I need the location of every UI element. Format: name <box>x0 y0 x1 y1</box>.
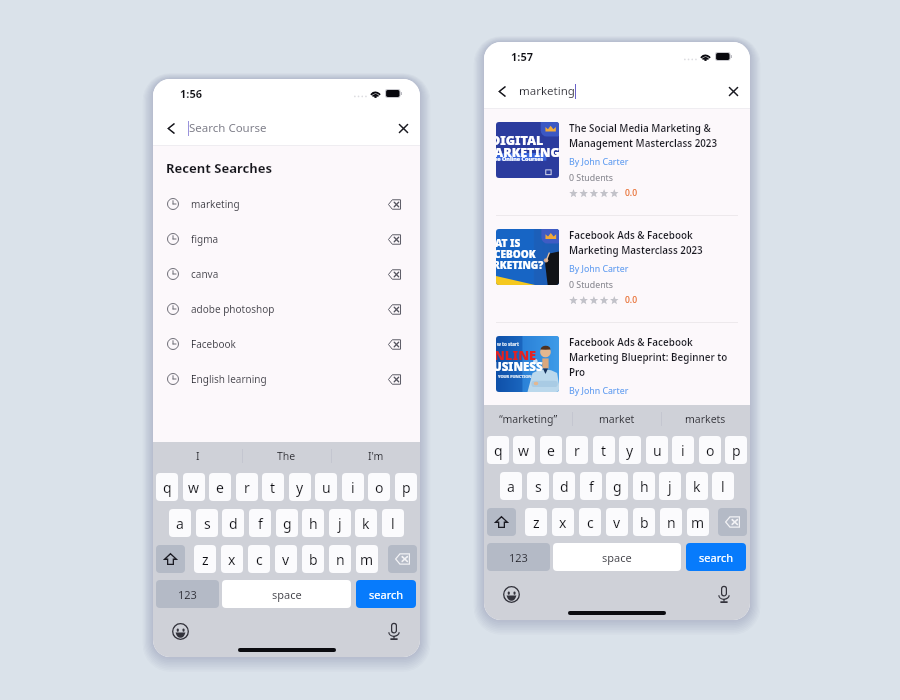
button[interactable]: Back <box>159 116 183 140</box>
button[interactable]: Remove figma <box>384 229 404 249</box>
button[interactable]: r <box>236 473 258 501</box>
staticText: k <box>693 477 701 496</box>
button[interactable]: figma <box>153 221 420 256</box>
button[interactable]: m <box>356 545 378 573</box>
button[interactable]: k <box>355 509 377 537</box>
button[interactable]: Remove canva <box>384 264 404 284</box>
button[interactable]: I'm <box>331 442 420 470</box>
button[interactable]: a <box>500 472 522 500</box>
button[interactable]: h <box>302 509 324 537</box>
button[interactable]: q <box>487 436 509 464</box>
staticText: canva <box>191 267 219 281</box>
button[interactable]: z <box>194 545 216 573</box>
button[interactable]: o <box>368 473 390 501</box>
button[interactable]: y <box>619 436 641 464</box>
button[interactable]: DIGITAL <box>484 109 750 215</box>
button[interactable]: 123 <box>156 580 219 608</box>
button[interactable]: c <box>248 545 270 573</box>
button[interactable]: “marketing” <box>484 405 572 433</box>
button[interactable]: s <box>527 472 549 500</box>
button[interactable]: The <box>242 442 331 470</box>
staticText: adobe photoshop <box>191 302 275 316</box>
button[interactable]: d <box>222 509 244 537</box>
button[interactable]: u <box>646 436 668 464</box>
button[interactable]: z <box>525 508 547 536</box>
button[interactable]: Remove adobe photoshop <box>384 299 404 319</box>
button[interactable]: Clear search <box>391 116 415 140</box>
button[interactable]: Backspace <box>388 545 417 573</box>
button[interactable]: p <box>395 473 417 501</box>
button[interactable]: w <box>183 473 205 501</box>
button[interactable]: l <box>712 472 734 500</box>
button[interactable]: Emoji keyboard <box>501 584 521 604</box>
button[interactable]: 123 <box>487 543 550 571</box>
button[interactable]: Shift <box>487 508 516 536</box>
button[interactable]: Remove English learning <box>384 369 404 389</box>
button[interactable]: u <box>315 473 337 501</box>
button[interactable]: x <box>221 545 243 573</box>
button[interactable]: adobe photoshop <box>153 291 420 326</box>
button[interactable]: l <box>382 509 404 537</box>
button[interactable]: k <box>686 472 708 500</box>
staticText: search <box>369 587 404 602</box>
staticText: The Social Media Marketing & <box>569 122 711 135</box>
button[interactable]: Dictate <box>384 621 404 641</box>
button[interactable]: f <box>580 472 602 500</box>
button[interactable]: English learning <box>153 361 420 396</box>
button[interactable]: canva <box>153 256 420 291</box>
button[interactable]: i <box>342 473 364 501</box>
button[interactable]: h <box>633 472 655 500</box>
button[interactable]: e <box>540 436 562 464</box>
button[interactable]: Remove marketing <box>384 194 404 214</box>
button[interactable]: markets <box>661 405 750 433</box>
button[interactable]: Backspace <box>718 508 747 536</box>
button[interactable]: marketing <box>153 186 420 221</box>
button[interactable]: o <box>699 436 721 464</box>
button[interactable]: Clear search <box>721 79 745 103</box>
button[interactable]: b <box>302 545 324 573</box>
button[interactable]: y <box>289 473 311 501</box>
button[interactable]: Remove Facebook <box>384 334 404 354</box>
button[interactable]: search <box>686 543 746 571</box>
button[interactable]: n <box>660 508 682 536</box>
button[interactable]: market <box>572 405 661 433</box>
button[interactable]: c <box>579 508 601 536</box>
button[interactable]: x <box>552 508 574 536</box>
button[interactable]: t <box>593 436 615 464</box>
button[interactable]: f <box>249 509 271 537</box>
button[interactable]: Facebook <box>153 326 420 361</box>
button[interactable]: d <box>553 472 575 500</box>
button[interactable]: s <box>196 509 218 537</box>
button[interactable]: Shift <box>156 545 185 573</box>
button[interactable]: p <box>725 436 747 464</box>
button[interactable]: e <box>209 473 231 501</box>
staticText: w <box>518 441 530 460</box>
button[interactable]: space <box>553 543 681 571</box>
staticText: figma <box>191 232 219 246</box>
button[interactable]: g <box>276 509 298 537</box>
button[interactable]: Back <box>490 79 514 103</box>
staticText: RKETING? <box>496 258 544 272</box>
button[interactable]: n <box>329 545 351 573</box>
button[interactable]: w <box>513 436 535 464</box>
button[interactable]: a <box>169 509 191 537</box>
button[interactable]: m <box>687 508 709 536</box>
button[interactable]: v <box>275 545 297 573</box>
button[interactable]: AT IS <box>484 216 750 322</box>
button[interactable]: search <box>356 580 416 608</box>
button[interactable]: v <box>606 508 628 536</box>
button[interactable]: b <box>633 508 655 536</box>
button[interactable]: t <box>262 473 284 501</box>
button[interactable]: I <box>153 442 242 470</box>
button[interactable]: Emoji keyboard <box>170 621 190 641</box>
button[interactable]: g <box>606 472 628 500</box>
button[interactable]: j <box>659 472 681 500</box>
button[interactable]: w to start <box>484 323 750 404</box>
button[interactable]: i <box>672 436 694 464</box>
button[interactable]: Dictate <box>714 584 734 604</box>
button[interactable]: space <box>222 580 351 608</box>
staticText: Recent Searches <box>166 159 272 177</box>
button[interactable]: q <box>156 473 178 501</box>
button[interactable]: r <box>566 436 588 464</box>
button[interactable]: j <box>329 509 351 537</box>
